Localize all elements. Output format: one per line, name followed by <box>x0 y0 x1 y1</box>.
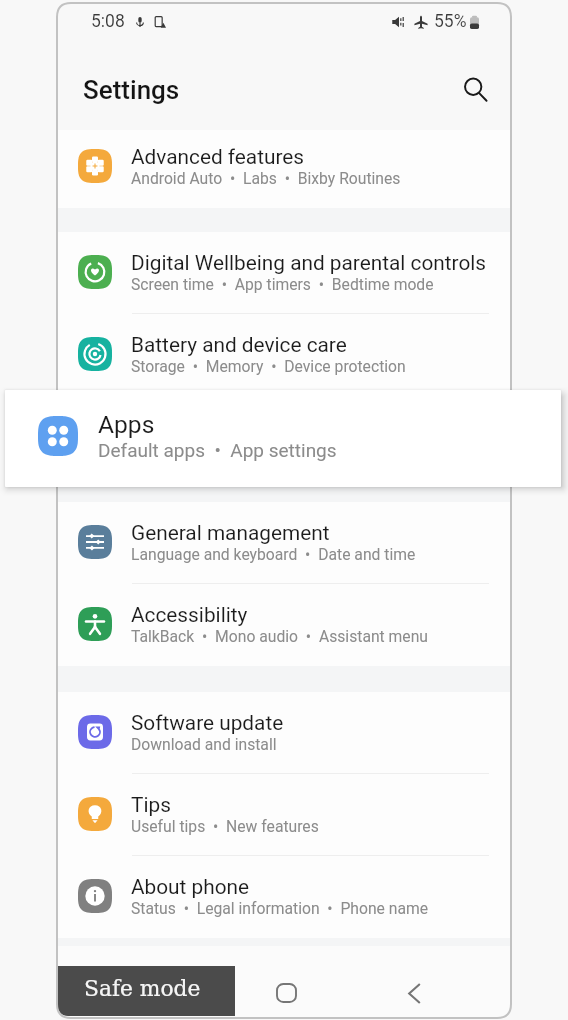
staticText: 55% <box>434 11 467 32</box>
button[interactable]: Back <box>398 977 430 1009</box>
staticText: Accessibility <box>131 603 248 627</box>
staticText: Default apps • App settings <box>98 439 337 461</box>
staticText: Advanced features <box>131 145 305 169</box>
staticText: Default apps • App settings <box>131 439 328 457</box>
button[interactable]: Advanced features <box>57 130 511 206</box>
staticText: Storage • Memory • Device protection <box>131 357 406 375</box>
staticText: Download and install <box>131 735 277 753</box>
button[interactable]: Safe mode <box>57 966 235 1016</box>
staticText: Useful tips • New features <box>131 817 319 835</box>
button[interactable]: Accessibility <box>57 584 511 666</box>
button[interactable]: Home <box>270 977 302 1009</box>
staticText: Android Auto • Labs • Bixby Routines <box>131 169 401 187</box>
staticText: About phone <box>131 875 250 899</box>
button[interactable]: About phone <box>57 856 511 938</box>
button[interactable]: Digital Wellbeing and parental controls <box>57 232 511 314</box>
staticText: 5:08 <box>91 11 125 32</box>
button[interactable]: Battery and device care <box>57 314 511 396</box>
staticText: Apps <box>131 415 179 439</box>
button[interactable]: Tips <box>57 774 511 856</box>
staticText: Safe mode <box>84 976 201 1001</box>
button[interactable]: General management <box>57 502 511 584</box>
staticText: Language and keyboard • Date and time <box>131 545 416 563</box>
staticText: Status • Legal information • Phone name <box>131 899 429 917</box>
staticText: General management <box>131 521 330 545</box>
staticText: TalkBack • Mono audio • Assistant menu <box>131 627 428 645</box>
staticText: Digital Wellbeing and parental controls <box>131 251 487 275</box>
button[interactable]: Apps <box>5 390 561 487</box>
button[interactable]: Apps <box>57 396 511 478</box>
staticText: Apps <box>98 410 155 439</box>
staticText: Battery and device care <box>131 333 347 357</box>
staticText: Settings <box>83 75 180 105</box>
button[interactable]: Search <box>457 71 493 107</box>
staticText: Screen time • App timers • Bedtime mode <box>131 275 434 293</box>
button[interactable]: Software update <box>57 692 511 774</box>
staticText: Software update <box>131 711 284 735</box>
staticText: Tips <box>131 793 171 817</box>
